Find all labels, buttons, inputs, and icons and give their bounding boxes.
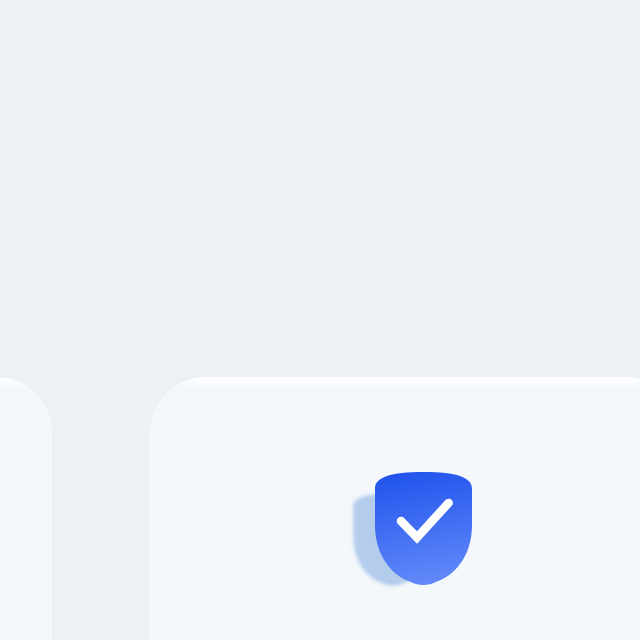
other: Protected	[330, 447, 490, 607]
button[interactable]: Your account is protected	[150, 377, 640, 640]
